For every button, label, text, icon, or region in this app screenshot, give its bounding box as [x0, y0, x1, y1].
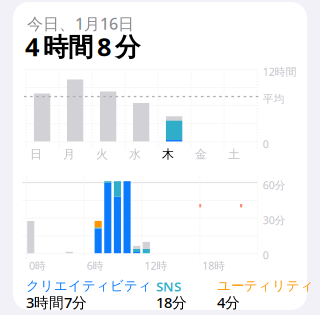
staticText: 4分	[217, 292, 240, 312]
staticText: ユーティリティ	[217, 277, 314, 294]
staticText: 0	[263, 137, 269, 151]
staticText: クリエイティビティ	[26, 277, 152, 294]
staticText: 0	[263, 248, 269, 262]
staticText: 木	[162, 147, 174, 162]
staticText: 4 時間 8 分	[25, 29, 140, 63]
staticText: 18時	[202, 258, 225, 273]
staticText: 日	[30, 147, 42, 162]
staticText: 水	[129, 147, 141, 162]
staticText: 土	[228, 147, 240, 162]
staticText: 60分	[263, 178, 286, 192]
staticText: 30分	[263, 213, 286, 227]
staticText: 今日、1月16日	[27, 13, 134, 34]
staticText: 月	[63, 147, 75, 162]
button[interactable]: SNS	[0, 0, 320, 315]
staticText: 平均	[263, 92, 285, 106]
staticText: 金	[195, 147, 207, 162]
staticText: 12時間	[263, 64, 297, 79]
staticText: 6時	[87, 258, 104, 273]
staticText: 12時	[145, 258, 168, 273]
staticText: 0時	[29, 258, 46, 273]
staticText: 火	[96, 147, 108, 162]
button[interactable]: ユーティリティ	[0, 0, 320, 315]
staticText: 18分	[156, 292, 187, 312]
button[interactable]: クリエイティビティ	[0, 0, 320, 315]
staticText: SNS	[156, 277, 181, 295]
staticText: 3時間7分	[26, 292, 87, 312]
